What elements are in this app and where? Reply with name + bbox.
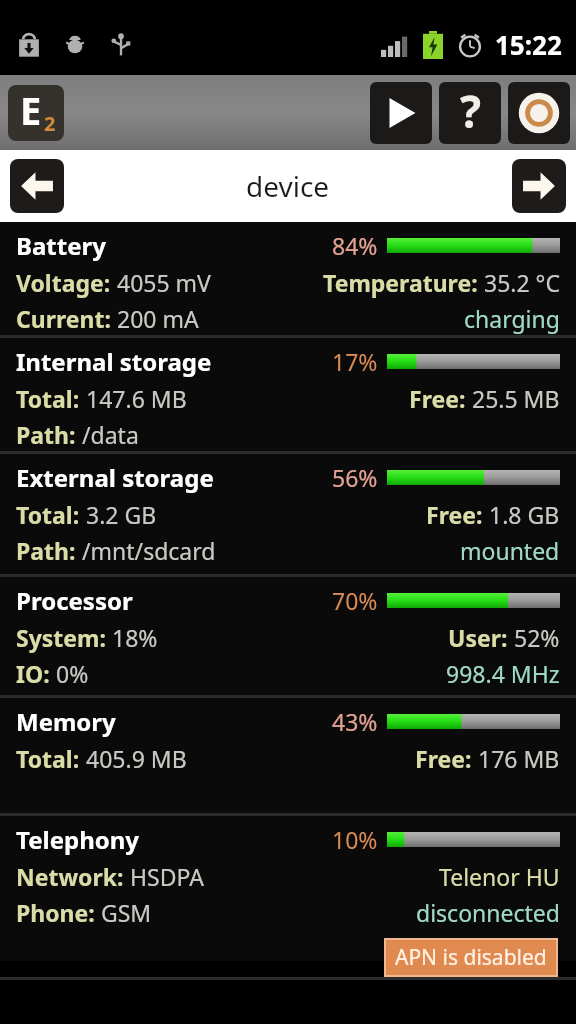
staticText: Memory xyxy=(16,705,332,738)
staticText: mounted xyxy=(460,535,560,566)
staticText: 2 xyxy=(44,110,56,137)
button[interactable]: Record xyxy=(508,82,570,144)
staticText: 1.8 GB xyxy=(489,499,560,530)
staticText: E xyxy=(20,85,42,136)
staticText: 56% xyxy=(332,462,378,493)
staticText: 70% xyxy=(332,585,378,616)
staticText: Total: xyxy=(16,383,80,414)
staticText: /mnt/sdcard xyxy=(82,535,216,566)
staticText: Free: xyxy=(415,743,472,774)
staticText: System: xyxy=(16,622,106,653)
staticText: Free: xyxy=(409,383,466,414)
staticText: 35.2 °C xyxy=(484,267,560,298)
button[interactable]: Elixir menu xyxy=(8,85,64,141)
staticText: IO: xyxy=(16,658,50,689)
button[interactable]: Processor xyxy=(0,577,576,695)
staticText: 43% xyxy=(332,706,378,737)
staticText: 3.2 GB xyxy=(86,499,157,530)
staticText: APN is disabled xyxy=(395,943,547,972)
staticText: ? xyxy=(460,82,481,141)
button[interactable]: Internal storage xyxy=(0,338,576,451)
staticText: External storage xyxy=(16,461,332,494)
staticText: Path: xyxy=(16,419,76,450)
button[interactable]: Memory xyxy=(0,698,576,813)
button[interactable]: Run xyxy=(370,82,432,144)
staticText: 18% xyxy=(112,622,158,653)
staticText: 10% xyxy=(332,824,378,855)
staticText: 25.5 MB xyxy=(472,383,560,414)
staticText: 200 mA xyxy=(117,303,199,334)
staticText: Battery xyxy=(16,229,332,262)
staticText: 147.6 MB xyxy=(86,383,187,414)
staticText: User: xyxy=(448,622,508,653)
staticText: device xyxy=(246,167,330,205)
staticText: 0% xyxy=(56,658,89,689)
staticText: disconnected xyxy=(416,897,560,928)
staticText: Telenor HU xyxy=(439,861,560,892)
staticText: /data xyxy=(82,419,139,450)
button[interactable]: Battery xyxy=(0,222,576,335)
staticText: charging xyxy=(464,303,560,334)
staticText: 405.9 MB xyxy=(86,743,187,774)
staticText: Total: xyxy=(16,743,80,774)
button[interactable]: Forward xyxy=(512,159,566,213)
staticText: Voltage: xyxy=(16,267,111,298)
staticText: Total: xyxy=(16,499,80,530)
staticText: Internal storage xyxy=(16,345,332,378)
staticText: Current: xyxy=(16,303,111,334)
staticText: 4055 mV xyxy=(117,267,211,298)
staticText: 17% xyxy=(332,346,378,377)
staticText: Telephony xyxy=(16,823,332,856)
button[interactable]: Telephony xyxy=(0,816,576,961)
staticText: GSM xyxy=(101,897,152,928)
staticText: Processor xyxy=(16,584,332,617)
button[interactable]: Back xyxy=(10,159,64,213)
staticText: 998.4 MHz xyxy=(446,658,560,689)
staticText: 52% xyxy=(514,622,560,653)
staticText: 176 MB xyxy=(478,743,560,774)
staticText: 84% xyxy=(332,230,378,261)
staticText: Phone: xyxy=(16,897,95,928)
staticText: 15:22 xyxy=(495,27,562,62)
button[interactable]: Help xyxy=(439,82,501,144)
staticText: Path: xyxy=(16,535,76,566)
button[interactable]: External storage xyxy=(0,454,576,574)
staticText: HSDPA xyxy=(130,861,204,892)
staticText: Network: xyxy=(16,861,124,892)
staticText: Temperature: xyxy=(323,267,478,298)
staticText: Free: xyxy=(426,499,483,530)
